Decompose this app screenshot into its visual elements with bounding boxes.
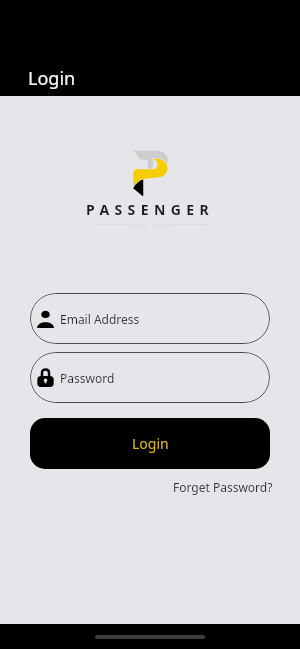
button[interactable]: Forget Password?: [173, 479, 300, 495]
staticText: PASSENGER: [86, 200, 215, 219]
staticText: Login: [28, 66, 76, 91]
button[interactable]: Password: [30, 352, 270, 403]
staticText: Login: [132, 434, 169, 453]
button[interactable]: Login: [30, 418, 270, 469]
button[interactable]: Email Address: [30, 293, 270, 344]
staticText: Password: [60, 370, 115, 386]
staticText: Email Address: [60, 311, 140, 327]
staticText: SAVE TRIP: [129, 221, 171, 229]
